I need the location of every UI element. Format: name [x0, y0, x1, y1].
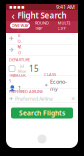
staticText: 9:41 AM — [56, 3, 75, 11]
staticText: ROUND TRIP — [35, 20, 49, 31]
staticText: ▪▪▪▪ — [9, 4, 25, 10]
staticText: ✈ — [9, 96, 13, 102]
button[interactable]: ROUND TRIP — [32, 22, 52, 28]
button[interactable]: ✈ — [6, 44, 78, 55]
staticText: 1 — [18, 84, 21, 91]
button[interactable]: MULTI-CITY — [54, 22, 74, 28]
staticText: Search Flights — [19, 109, 65, 117]
staticText: Mon — [18, 69, 26, 74]
staticText: Economy — [50, 78, 67, 92]
staticText: TO — [18, 45, 21, 55]
staticText: FROM — [17, 28, 21, 49]
button[interactable]: ✈ — [6, 33, 78, 44]
button[interactable]: Back — [8, 10, 18, 20]
staticText: MULTI-CITY — [57, 20, 70, 31]
button[interactable]: DEPARTURE — [6, 56, 78, 75]
staticText: Preferred Airline — [15, 95, 53, 102]
staticText: ✦ — [44, 82, 48, 88]
button[interactable]: Search Flights — [11, 107, 73, 118]
button[interactable]: PREFERRED AIRLINE — [6, 89, 78, 102]
staticText: TRAVELERS — [9, 73, 26, 83]
staticText: ✈ — [9, 46, 15, 54]
staticText: PREFERRED AIRLINE — [9, 89, 43, 94]
staticText: Jul — [20, 63, 24, 69]
button[interactable]: CLASS — [42, 75, 78, 88]
staticText: ONE WAY — [11, 23, 28, 28]
staticText: ‹ — [11, 8, 14, 23]
button[interactable]: TRAVELERS — [6, 75, 42, 88]
staticText: ✈ — [8, 35, 14, 42]
staticText: CLASS — [44, 72, 56, 77]
staticText: 15 — [29, 63, 39, 74]
button[interactable]: ONE WAY — [10, 22, 30, 28]
staticText: ✕ — [71, 96, 75, 102]
staticText: Flight Search — [17, 10, 66, 21]
staticText: 👤 — [9, 85, 16, 91]
staticText: DEPARTURE — [9, 57, 30, 62]
